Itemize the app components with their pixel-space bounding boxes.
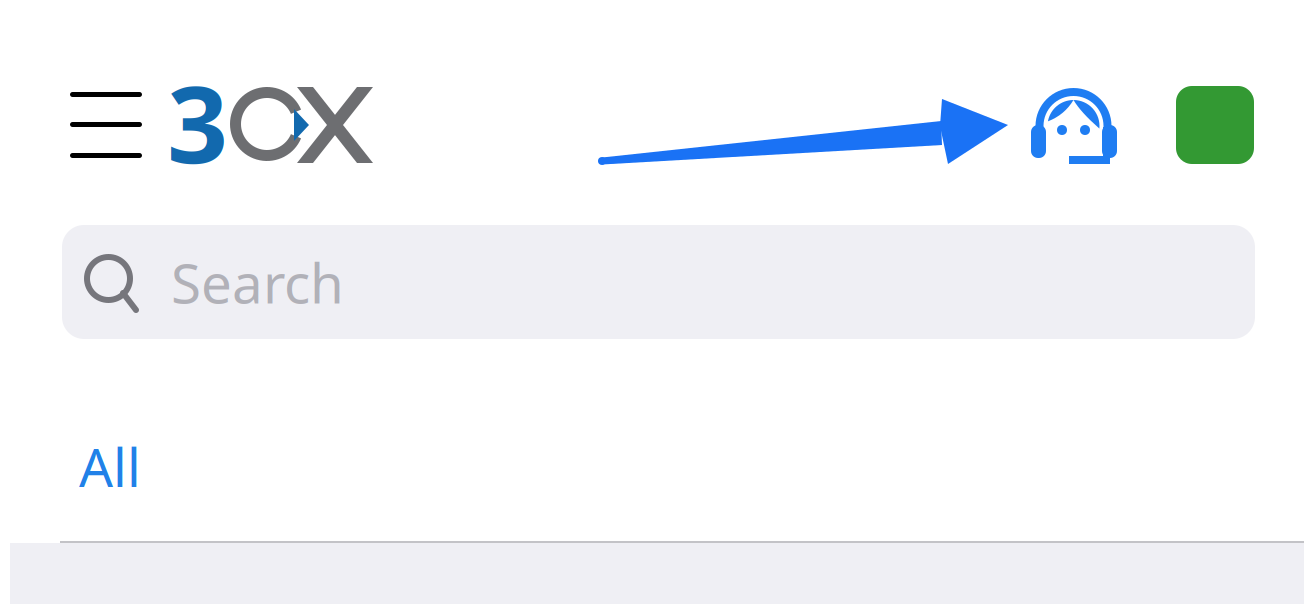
button[interactable]: Search (0, 0, 1193, 114)
button[interactable]: All (0, 0, 120, 116)
staticText: 3 (167, 51, 228, 193)
button[interactable]: Menu (0, 0, 120, 116)
button[interactable]: Profile and status (0, 0, 126, 126)
staticText: All (79, 431, 141, 502)
staticText: Search (171, 246, 344, 319)
button[interactable]: Contact centre (0, 0, 120, 116)
